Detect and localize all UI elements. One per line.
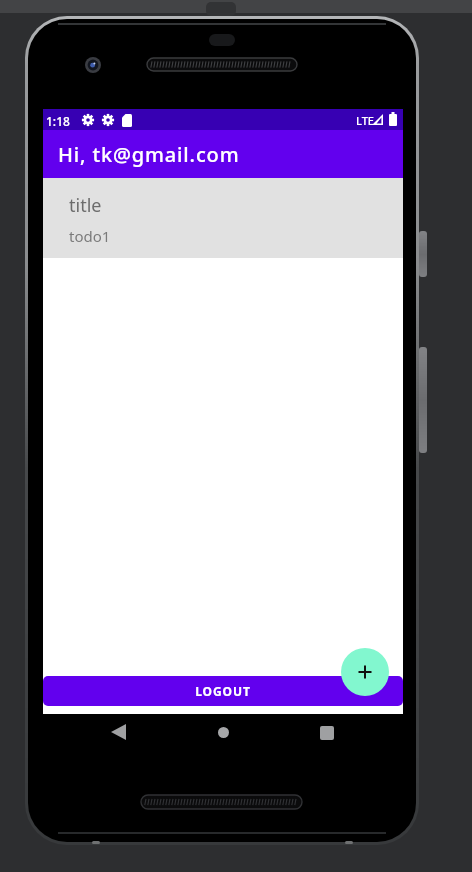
staticText: title — [69, 193, 102, 218]
button[interactable]: title — [43, 178, 403, 258]
staticText: 1:18 — [46, 113, 70, 129]
button[interactable] — [104, 718, 132, 746]
staticText: LOGOUT — [195, 683, 251, 699]
button[interactable]: LOGOUT — [43, 676, 403, 706]
staticText: Hi, tk@gmail.com — [58, 141, 240, 168]
staticText: LTE — [356, 113, 374, 128]
button[interactable] — [341, 648, 389, 696]
button[interactable] — [313, 719, 341, 747]
staticText: todo1 — [69, 226, 111, 246]
button[interactable] — [209, 718, 237, 746]
